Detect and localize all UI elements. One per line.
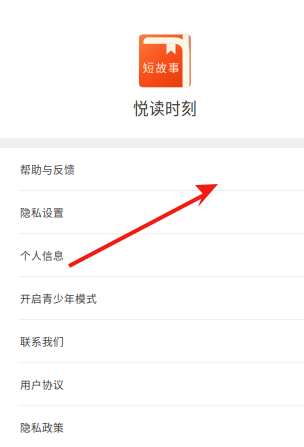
button[interactable]: 隐私政策: [0, 406, 304, 447]
button[interactable]: 隐私设置: [0, 191, 304, 234]
button[interactable]: 个人信息: [0, 234, 304, 277]
staticText: 联系我们: [20, 333, 64, 349]
staticText: 故: [155, 59, 166, 76]
staticText: 帮助与反馈: [20, 161, 75, 177]
button[interactable]: 联系我们: [0, 320, 304, 363]
button[interactable]: 帮助与反馈: [0, 148, 304, 191]
staticText: 事: [168, 59, 179, 76]
button[interactable]: 用户协议: [0, 363, 304, 406]
staticText: 用户协议: [20, 376, 64, 392]
staticText: 短: [143, 59, 154, 76]
staticText: 个人信息: [20, 247, 64, 263]
staticText: 隐私政策: [20, 419, 64, 435]
button[interactable]: 开启青少年模式: [0, 277, 304, 320]
staticText: 悦读时刻: [133, 96, 197, 119]
staticText: 隐私设置: [20, 204, 64, 220]
staticText: 开启青少年模式: [20, 290, 97, 306]
